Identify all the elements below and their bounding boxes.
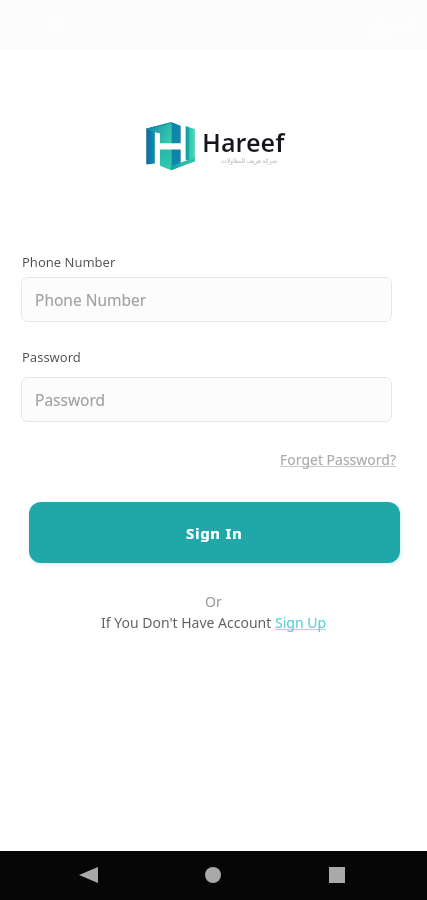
staticText: Or (205, 592, 222, 611)
staticText: Hareef (202, 125, 285, 159)
staticText: Sign In (186, 523, 243, 543)
button[interactable]: Forget Password? (280, 450, 396, 469)
staticText: If You Don't Have Account (101, 613, 275, 632)
button[interactable]: Phone Number (21, 277, 392, 322)
staticText: Password (22, 348, 81, 366)
staticText: Password (35, 389, 106, 410)
button[interactable]: Home (189, 851, 237, 899)
button[interactable]: Sign Up (275, 613, 327, 632)
staticText: شركة هريف للمقاولات (221, 157, 278, 165)
button[interactable]: Recent apps (313, 851, 361, 899)
staticText: Forget Password? (280, 450, 396, 469)
staticText: Phone Number (35, 289, 147, 310)
staticText: Sign Up (275, 613, 327, 632)
button[interactable]: Password (21, 377, 392, 422)
staticText: Phone Number (22, 253, 116, 271)
button[interactable]: Back (64, 851, 112, 899)
button[interactable]: Sign In (29, 502, 400, 563)
